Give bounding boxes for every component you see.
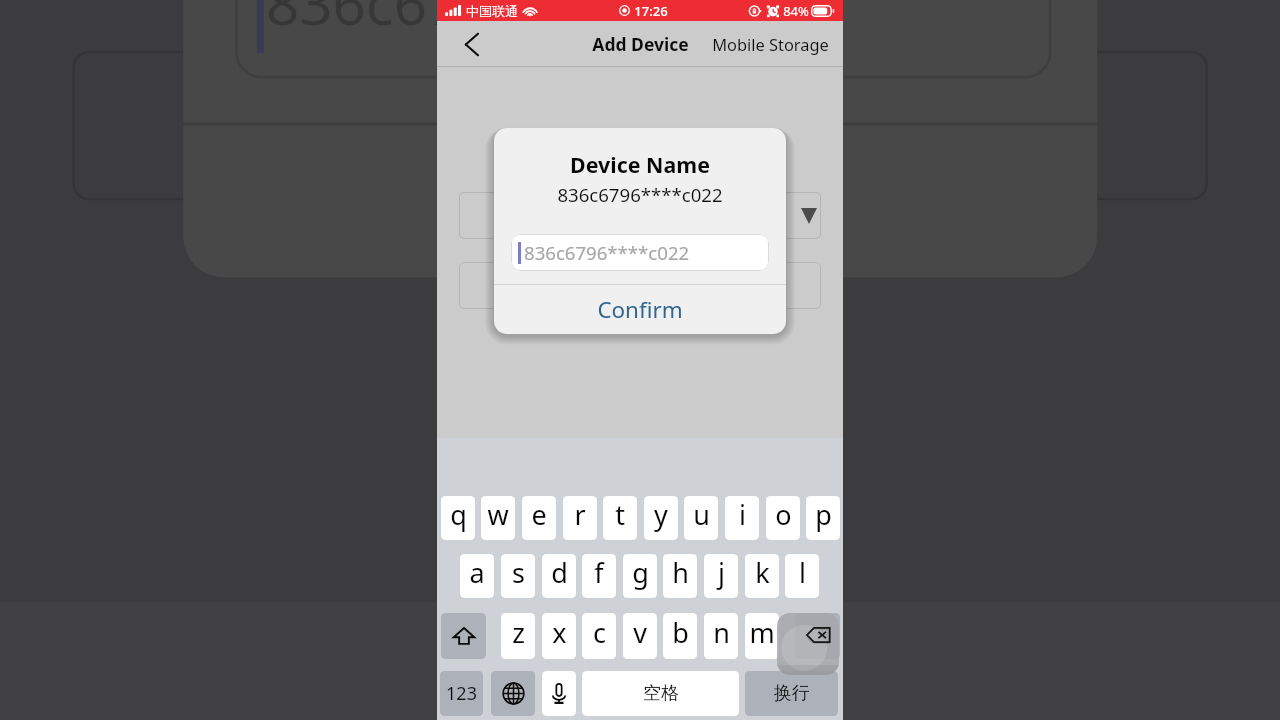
staticText: 17:26 [634, 2, 668, 20]
button[interactable]: i [725, 496, 759, 540]
staticText: o [775, 496, 792, 533]
button[interactable]: n [704, 613, 738, 659]
button[interactable]: 换行 [745, 671, 838, 716]
staticText: f [594, 554, 604, 591]
button[interactable]: o [766, 496, 800, 540]
button[interactable]: Voice input [542, 671, 576, 716]
button[interactable]: u [684, 496, 718, 540]
button[interactable]: w [481, 496, 515, 540]
staticText: 836c6796****c022 [266, 0, 783, 42]
button[interactable]: a [460, 554, 494, 598]
staticText: g [632, 554, 649, 591]
button[interactable]: k [745, 554, 779, 598]
button[interactable]: 空格 [582, 671, 739, 716]
button[interactable]: v [623, 613, 657, 659]
staticText: s [512, 554, 525, 591]
button[interactable]: t [603, 496, 637, 540]
button[interactable]: d [542, 554, 576, 598]
button[interactable]: f [582, 554, 616, 598]
staticText: y [654, 496, 668, 533]
staticText: l [799, 554, 806, 591]
staticText: d [551, 554, 568, 591]
button[interactable]: Shift [441, 613, 486, 659]
button[interactable]: Backspace [795, 613, 840, 659]
button[interactable]: l [785, 554, 819, 598]
button[interactable]: 123 [440, 671, 483, 716]
staticText: e [531, 496, 547, 533]
staticText: v [633, 614, 647, 651]
button[interactable]: s [501, 554, 535, 598]
staticText: Mobile Storage [712, 33, 829, 55]
button[interactable]: g [623, 554, 657, 598]
staticText: b [672, 614, 689, 651]
staticText: q [450, 496, 467, 533]
staticText: z [512, 614, 525, 651]
button[interactable]: Back [454, 22, 488, 66]
staticText: r [574, 496, 586, 533]
button[interactable]: Confirm [494, 285, 786, 334]
staticText: a [469, 554, 485, 591]
staticText: h [672, 554, 689, 591]
button[interactable]: r [563, 496, 597, 540]
button[interactable]: Switch keyboard [491, 671, 535, 716]
staticText: 84% [783, 2, 809, 20]
staticText: Confirm [597, 294, 683, 325]
staticText: 123 [446, 681, 477, 706]
staticText: w [487, 496, 509, 533]
button[interactable]: 836c6796****c022 [511, 234, 769, 271]
staticText: 中国联通 [466, 3, 518, 19]
staticText: t [615, 496, 625, 533]
button[interactable]: m [745, 613, 779, 659]
button[interactable]: p [806, 496, 840, 540]
button[interactable]: h [663, 554, 697, 598]
staticText: p [815, 496, 832, 533]
button[interactable]: j [704, 554, 738, 598]
button[interactable]: b [663, 613, 697, 659]
staticText: 空格 [643, 682, 679, 705]
staticText: i [739, 496, 746, 533]
staticText: 836c6796****c022 [494, 182, 786, 207]
staticText: Device Name [494, 150, 786, 179]
staticText: m [749, 614, 775, 651]
staticText: 换行 [774, 682, 810, 705]
button[interactable]: q [441, 496, 475, 540]
staticText: Add Device [592, 32, 689, 56]
staticText: j [718, 554, 725, 591]
staticText: 836c6796****c022 [524, 240, 690, 265]
button[interactable]: y [644, 496, 678, 540]
button[interactable]: c [582, 613, 616, 659]
button[interactable]: e [522, 496, 556, 540]
staticText: u [693, 496, 710, 533]
button[interactable]: z [501, 613, 535, 659]
staticText: n [713, 614, 730, 651]
staticText: k [755, 554, 770, 591]
button[interactable]: x [542, 613, 576, 659]
button[interactable]: Mobile Storage [708, 22, 832, 66]
staticText: x [552, 614, 567, 651]
staticText: c [593, 614, 606, 651]
